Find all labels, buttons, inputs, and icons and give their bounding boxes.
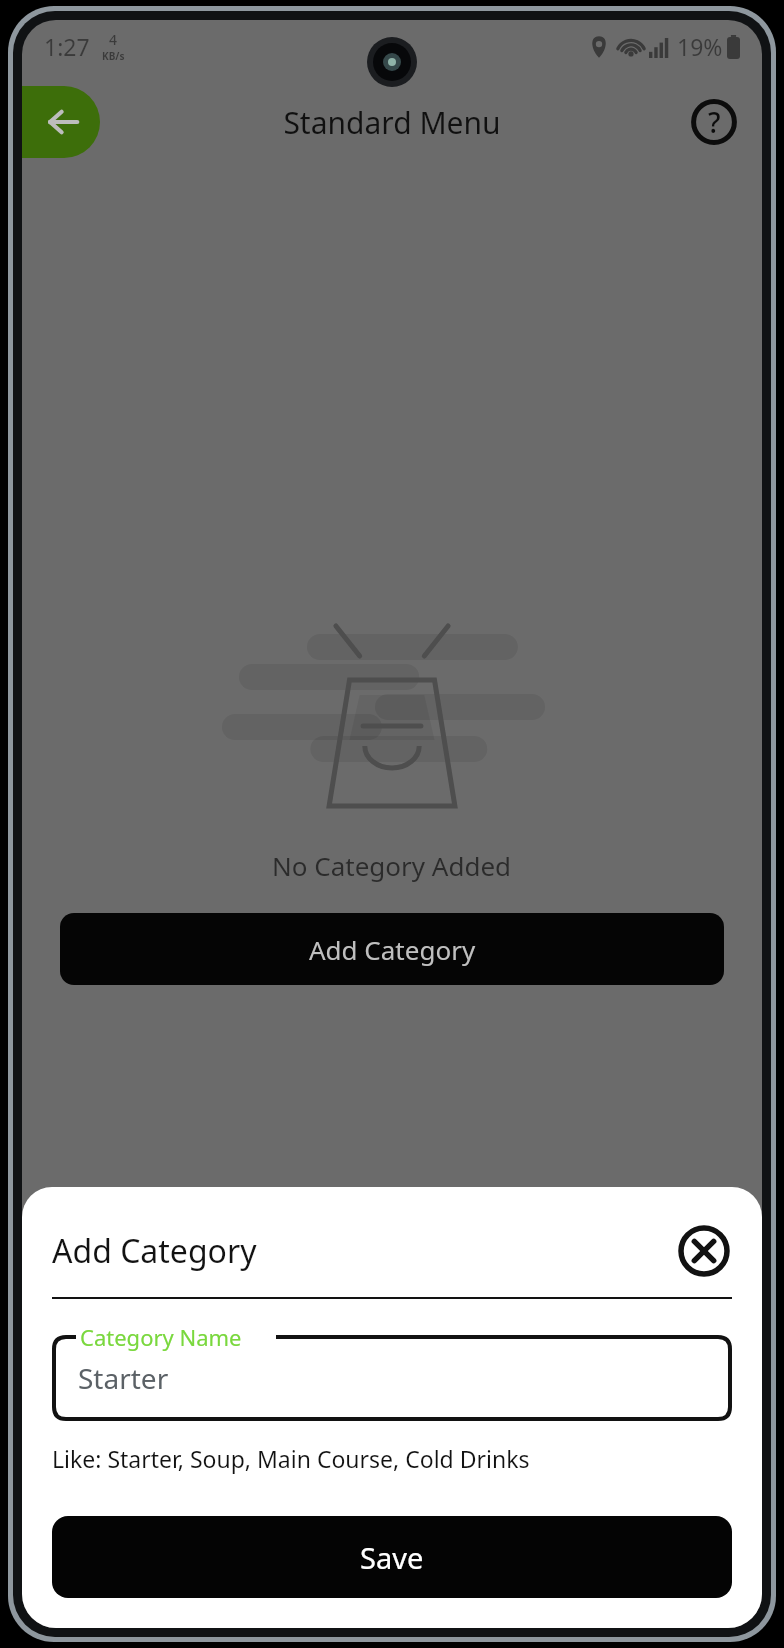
staticText: ?	[708, 103, 721, 141]
staticText: 4	[109, 30, 118, 49]
button[interactable]: Close	[676, 1223, 732, 1279]
staticText: KB/s	[102, 49, 125, 63]
staticText: No Category Added	[272, 848, 512, 883]
staticText: Standard Menu	[283, 102, 501, 143]
staticText: Starter	[78, 1359, 169, 1397]
staticText: Add Category	[309, 932, 476, 967]
button[interactable]: Save	[52, 1516, 732, 1598]
button[interactable]: Back	[22, 86, 100, 158]
staticText: Add Category	[52, 1229, 676, 1273]
staticText: Save	[360, 1538, 424, 1577]
button[interactable]: Add Category	[60, 913, 724, 985]
staticText: 19%	[677, 31, 723, 62]
staticText: Like: Starter, Soup, Main Course, Cold D…	[52, 1443, 530, 1474]
button[interactable]: Help	[688, 96, 740, 148]
staticText: Category Name	[80, 1322, 242, 1352]
staticText: 1:27	[44, 31, 90, 62]
